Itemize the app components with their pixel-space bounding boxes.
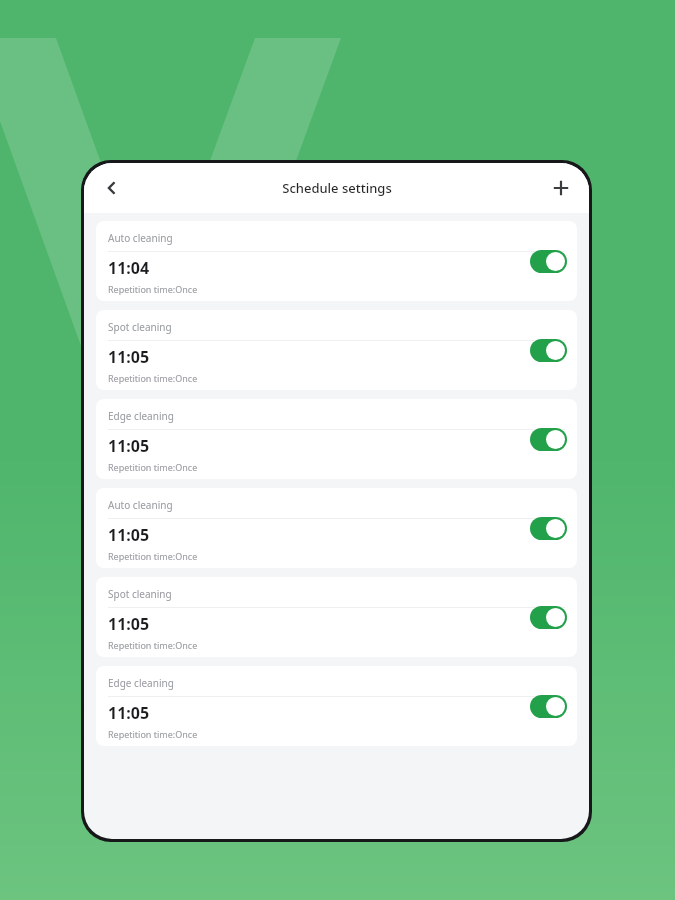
button[interactable]: Schedule enabled toggle [530, 517, 567, 540]
staticText: 11:05 [108, 613, 150, 635]
staticText: 11:05 [108, 435, 150, 457]
staticText: Repetition time:Once [108, 461, 198, 473]
button[interactable]: Schedule enabled toggle [530, 695, 567, 718]
button[interactable]: Schedule enabled toggle [530, 250, 567, 273]
button[interactable]: Schedule enabled toggle [530, 606, 567, 629]
staticText: 11:05 [108, 524, 150, 546]
staticText: Repetition time:Once [108, 372, 198, 384]
staticText: 11:05 [108, 346, 150, 368]
staticText: Auto cleaning [108, 231, 173, 245]
staticText: Spot cleaning [108, 320, 172, 334]
button[interactable]: Edge cleaning [96, 666, 577, 746]
staticText: Repetition time:Once [108, 728, 198, 740]
staticText: Edge cleaning [108, 409, 174, 423]
staticText: Edge cleaning [108, 676, 174, 690]
button[interactable]: Back [92, 168, 132, 208]
staticText: Repetition time:Once [108, 639, 198, 651]
staticText: 11:04 [108, 257, 150, 279]
button[interactable]: Spot cleaning [96, 310, 577, 390]
button[interactable]: Spot cleaning [96, 577, 577, 657]
staticText: Schedule settings [282, 179, 392, 197]
staticText: Auto cleaning [108, 498, 173, 512]
button[interactable]: Edge cleaning [96, 399, 577, 479]
staticText: 11:05 [108, 702, 150, 724]
button[interactable]: Add schedule [541, 168, 581, 208]
button[interactable]: Auto cleaning [96, 221, 577, 301]
button[interactable]: Schedule enabled toggle [530, 428, 567, 451]
staticText: Spot cleaning [108, 587, 172, 601]
staticText: Repetition time:Once [108, 283, 198, 295]
button[interactable]: Schedule enabled toggle [530, 339, 567, 362]
button[interactable]: Auto cleaning [96, 488, 577, 568]
staticText: Repetition time:Once [108, 550, 198, 562]
